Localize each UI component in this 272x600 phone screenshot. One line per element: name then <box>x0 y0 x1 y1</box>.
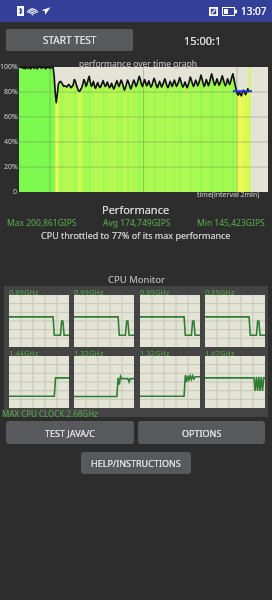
staticText: 100% <box>0 62 18 72</box>
staticText: 0.69GHz <box>9 287 39 297</box>
staticText: CPU throttled to 77% of its max performa… <box>41 229 231 241</box>
staticText: OPTIONS <box>182 427 222 439</box>
staticText: 13:07 <box>241 4 267 18</box>
staticText: 0 <box>13 187 18 197</box>
staticText: HELP/INSTRUCTIONS <box>91 457 181 469</box>
button[interactable]: OPTIONS <box>138 421 265 444</box>
staticText: 0.69GHz <box>205 287 235 297</box>
staticText: MAX CPU CLOCK:2.68GHz <box>2 408 98 419</box>
staticText: 1.44GHz <box>9 348 39 358</box>
button[interactable]: HELP/INSTRUCTIONS <box>81 452 191 474</box>
button[interactable]: TEST JAVA/C <box>6 421 134 444</box>
staticText: 1.32GHz <box>140 348 170 358</box>
staticText: Max 200,861GIPS <box>7 217 77 229</box>
staticText: 60% <box>4 112 18 122</box>
staticText: Performance <box>102 202 170 217</box>
staticText: 80% <box>4 87 18 97</box>
staticText: 40% <box>4 137 18 147</box>
staticText: 15:00:1 <box>184 33 222 48</box>
staticText: 1.32GHz <box>74 348 104 358</box>
staticText: performance over time graph <box>79 58 197 70</box>
staticText: Min 145,423GIPS <box>197 217 265 229</box>
button[interactable]: START TEST <box>6 29 133 51</box>
staticText: 0.69GHz <box>74 287 104 297</box>
staticText: TEST JAVA/C <box>45 427 95 439</box>
staticText: time(interval 2min) <box>197 190 260 200</box>
staticText: 1.67GHz <box>205 348 235 358</box>
staticText: START TEST <box>43 33 97 47</box>
staticText: Avg 174,749GIPS <box>103 217 171 229</box>
staticText: 20% <box>4 162 18 172</box>
staticText: CPU Monitor <box>108 273 165 286</box>
staticText: 0.69GHz <box>140 287 170 297</box>
